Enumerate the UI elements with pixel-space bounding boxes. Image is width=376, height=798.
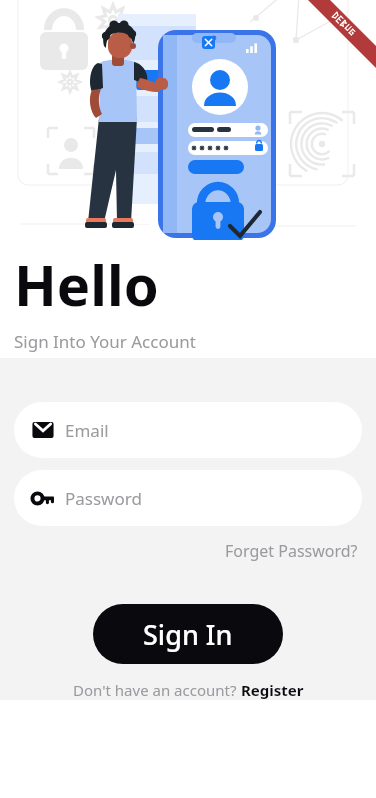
staticText: Sign Into Your Account: [14, 330, 196, 353]
staticText: Don't have an account?: [73, 680, 241, 700]
button[interactable]: Password input: [14, 470, 362, 526]
staticText: Sign In: [143, 616, 233, 653]
staticText: Register: [241, 680, 304, 700]
staticText: Email: [65, 419, 109, 442]
button[interactable]: Forget Password?: [221, 536, 362, 566]
staticText: Hello: [14, 246, 159, 322]
staticText: Password: [65, 487, 142, 510]
button[interactable]: Email input: [14, 402, 362, 458]
staticText: Forget Password?: [225, 540, 358, 562]
button[interactable]: Sign In: [93, 604, 283, 664]
button[interactable]: Register: [241, 680, 304, 700]
